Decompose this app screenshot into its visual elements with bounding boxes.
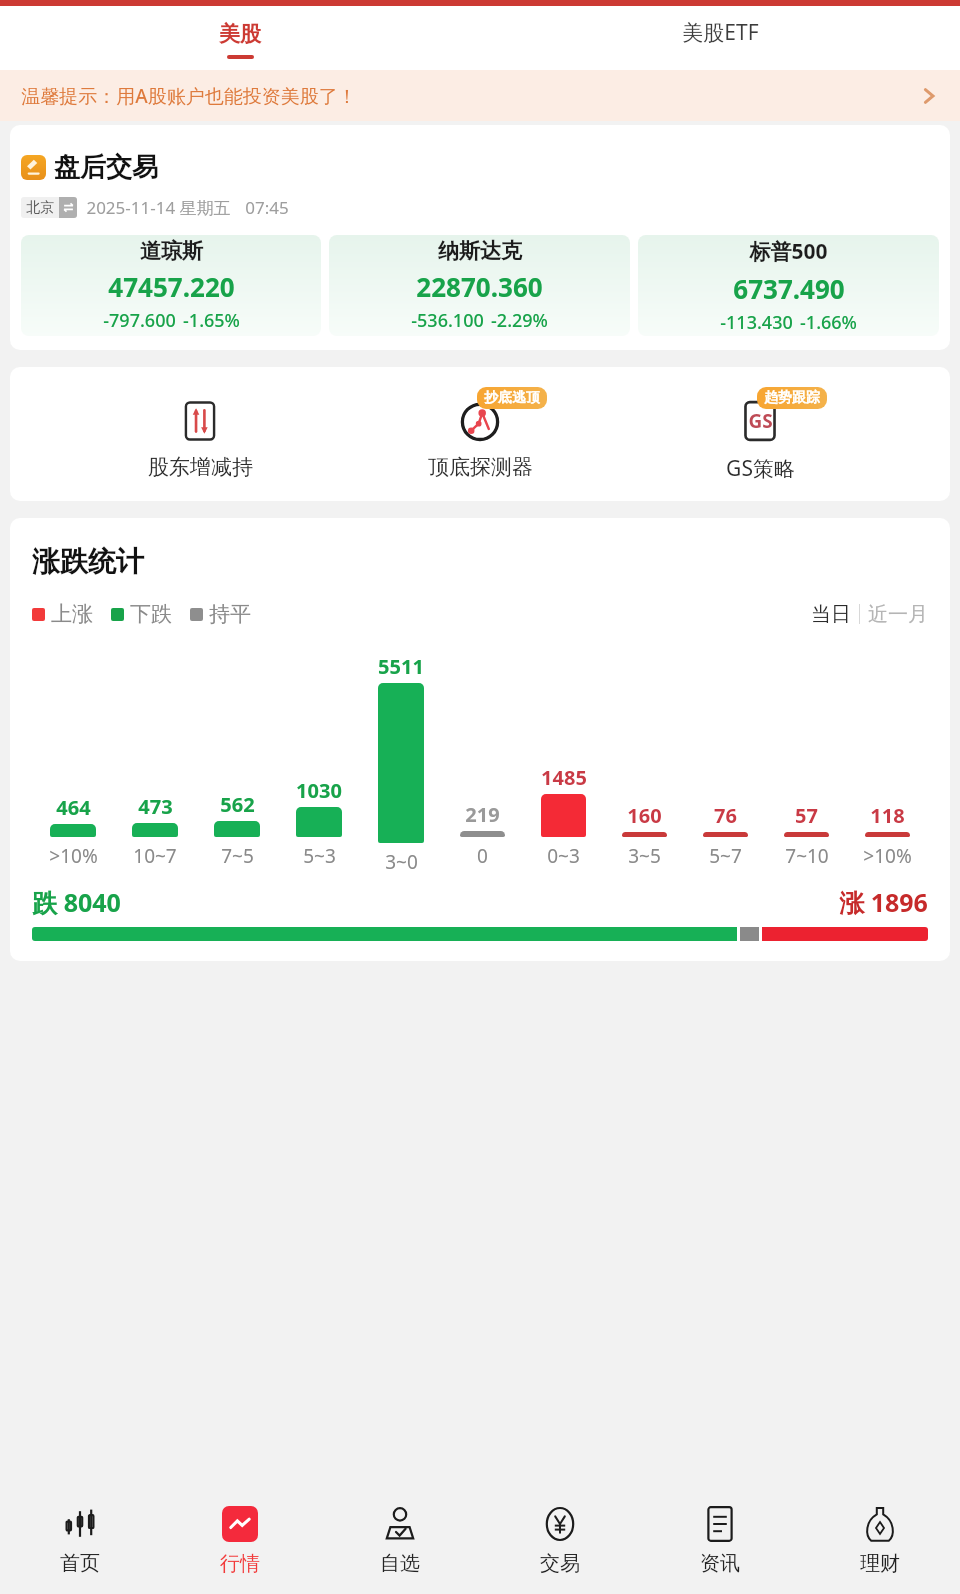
other: 理财 [860,1504,900,1544]
other: GS策略 [738,399,782,443]
staticText: 温馨提示：用A股账户也能投资美股了！ [21,83,357,109]
button[interactable]: 理财 [800,1490,960,1594]
staticText: 5~3 [303,843,336,869]
staticText: 趋势跟踪 [764,389,820,407]
staticText: -1.66% [800,310,857,335]
staticText: >10% [49,843,98,869]
other: 自选 [380,1504,420,1544]
staticText: 118 [870,802,905,829]
button[interactable]: 近一月 [868,602,928,627]
staticText: 行情 [220,1551,260,1576]
staticText: >10% [863,843,912,869]
staticText: 抄底逃顶 [484,389,540,407]
staticText: 道琼斯 [140,238,203,264]
button[interactable]: 交易 [480,1490,640,1594]
button[interactable]: 当日 [811,602,851,627]
staticText: 理财 [860,1551,900,1576]
staticText: -1.65% [183,308,240,333]
staticText: 473 [138,793,173,820]
other: 股东增减持 [178,399,222,443]
button[interactable]: 资讯 [640,1490,800,1594]
staticText: 北京 [26,199,54,217]
staticText: 1485 [541,764,587,791]
staticText: 顶底探测器 [428,454,533,480]
button[interactable]: 美股ETF [480,6,960,70]
other: 交易 [540,1504,580,1544]
staticText: -2.29% [491,308,548,333]
button[interactable]: 标普500 [638,235,939,336]
button[interactable]: 行情 [160,1490,320,1594]
staticText: 7~10 [785,843,829,869]
other: 首页 [60,1504,100,1544]
staticText: 近一月 [868,602,928,627]
button[interactable]: 北京 [21,197,77,218]
staticText: 47457.220 [108,269,235,304]
staticText: 当日 [811,602,851,627]
staticText: 464 [56,794,91,821]
button[interactable]: 股东增减持 [110,387,290,480]
button[interactable]: 温馨提示：用A股账户也能投资美股了！ [0,70,960,121]
staticText: 219 [465,801,500,828]
staticText: 首页 [60,1551,100,1576]
staticText: -797.600 [103,308,176,333]
button[interactable]: 首页 [0,1490,160,1594]
button[interactable]: 自选 [320,1490,480,1594]
staticText: 交易 [540,1551,580,1576]
staticText: 1030 [296,777,342,804]
button[interactable]: 美股 [0,6,480,70]
staticText: 5511 [378,653,424,680]
staticText: 2025-11-14 星期五 [86,196,231,219]
staticText: 纳斯达克 [438,238,522,264]
staticText: 上涨 [51,601,93,627]
staticText: 资讯 [700,1551,740,1576]
staticText: GS [748,408,773,434]
staticText: GS策略 [726,454,795,483]
staticText: 3~5 [628,843,661,869]
staticText: 562 [220,791,255,818]
staticText: 下跌 [130,601,172,627]
button[interactable]: GS策略 [670,387,850,483]
other: 行情 [222,1506,258,1542]
staticText: 跌 8040 [32,885,121,919]
staticText: 涨跌统计 [32,544,144,579]
staticText: 涨 1896 [839,885,928,919]
button[interactable]: 顶底探测器 [390,387,570,480]
staticText: 5~7 [709,843,742,869]
staticText: 自选 [380,1551,420,1576]
staticText: 美股ETF [682,18,759,47]
staticText: 股东增减持 [148,454,253,480]
staticText: 76 [714,802,737,829]
staticText: 美股 [219,21,261,47]
staticText: 0~3 [547,843,580,869]
staticText: 160 [627,802,662,829]
staticText: -536.100 [411,308,484,333]
button[interactable]: 道琼斯 [21,235,321,336]
staticText: 3~0 [385,849,418,869]
staticText: 7~5 [221,843,254,869]
other: 顶底探测器 [458,399,502,443]
staticText: 22870.360 [416,269,543,304]
staticText: 标普500 [749,237,828,266]
staticText: 6737.490 [733,271,845,306]
other: 资讯 [700,1504,740,1544]
staticText: 57 [795,802,818,829]
staticText: 0 [477,843,488,869]
staticText: -113.430 [720,310,793,335]
button[interactable]: 纳斯达克 [329,235,630,336]
staticText: 07:45 [245,196,289,219]
staticText: 盘后交易 [54,151,158,184]
staticText: 持平 [209,601,251,627]
staticText: 10~7 [133,843,177,869]
